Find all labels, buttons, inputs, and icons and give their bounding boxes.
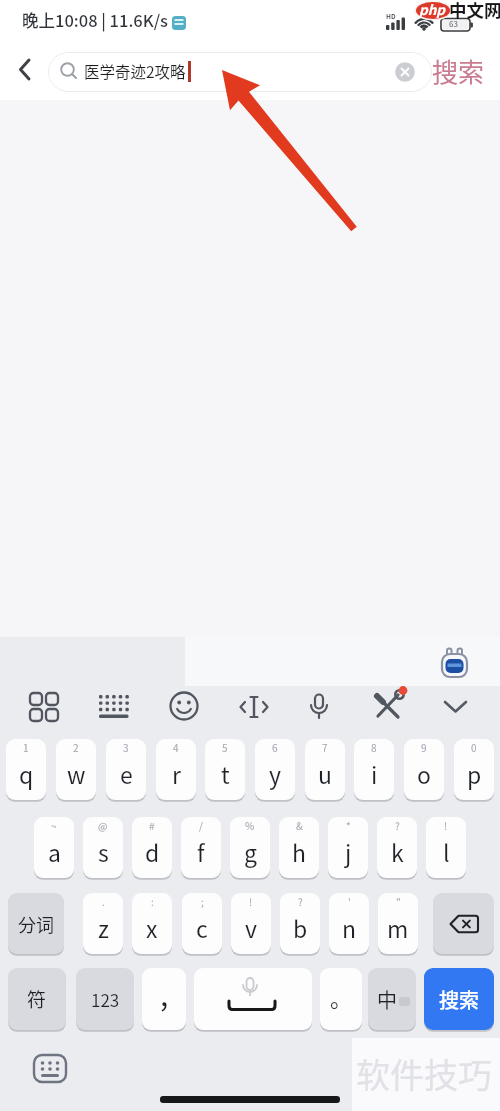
button[interactable]: @ bbox=[83, 817, 123, 878]
staticText: 医学奇迹2攻略 bbox=[84, 60, 186, 82]
staticText: 7 bbox=[322, 740, 328, 754]
button[interactable]: 搜索 bbox=[424, 968, 494, 1030]
button[interactable]: 8 bbox=[354, 739, 394, 800]
button[interactable]: 2 bbox=[56, 739, 96, 800]
staticText: 63 bbox=[449, 18, 458, 30]
staticText: 1 bbox=[23, 740, 29, 754]
button[interactable]: , bbox=[142, 968, 186, 1030]
button[interactable]: / bbox=[181, 817, 221, 878]
button[interactable] bbox=[168, 690, 202, 726]
button[interactable]: 6 bbox=[255, 739, 295, 800]
staticText: : bbox=[151, 894, 154, 908]
staticText: x bbox=[146, 911, 158, 944]
button[interactable]: ' bbox=[329, 893, 369, 954]
staticText: w bbox=[67, 757, 86, 790]
staticText: / bbox=[199, 818, 203, 832]
button[interactable]: ~ bbox=[34, 817, 74, 878]
staticText: ! bbox=[249, 894, 253, 908]
button[interactable]: 4 bbox=[156, 739, 196, 800]
staticText: ~ bbox=[51, 818, 57, 832]
button[interactable] bbox=[303, 690, 335, 726]
staticText: k bbox=[391, 835, 404, 868]
button[interactable]: 中 bbox=[368, 968, 416, 1030]
staticText: 0 bbox=[471, 740, 477, 754]
button[interactable] bbox=[30, 1052, 70, 1086]
staticText: o bbox=[417, 757, 431, 790]
staticText: @ bbox=[98, 818, 108, 832]
button[interactable] bbox=[8, 52, 44, 90]
button[interactable]: ! bbox=[231, 893, 271, 954]
staticText: v bbox=[245, 911, 257, 944]
staticText: 8 bbox=[371, 740, 377, 754]
button[interactable] bbox=[96, 690, 134, 726]
button[interactable]: 1 bbox=[6, 739, 46, 800]
staticText: 6 bbox=[272, 740, 278, 754]
button[interactable]: ; bbox=[182, 893, 222, 954]
staticText: z bbox=[98, 911, 109, 944]
button[interactable] bbox=[433, 893, 494, 954]
staticText: ; bbox=[201, 894, 204, 908]
button[interactable]: ! bbox=[426, 817, 466, 878]
button[interactable] bbox=[440, 646, 470, 680]
button[interactable]: ? bbox=[377, 817, 417, 878]
staticText: r bbox=[172, 757, 181, 790]
button[interactable]: 7 bbox=[305, 739, 345, 800]
staticText: 123 bbox=[91, 987, 120, 1012]
staticText: g bbox=[244, 835, 257, 868]
button[interactable]: # bbox=[132, 817, 172, 878]
button[interactable]: % bbox=[230, 817, 270, 878]
button[interactable] bbox=[237, 690, 271, 726]
staticText: , bbox=[160, 971, 169, 1014]
button[interactable] bbox=[440, 690, 472, 726]
button[interactable]: 123 bbox=[76, 968, 134, 1030]
staticText: ? bbox=[395, 818, 400, 832]
staticText: 晚上10:08 | 11.6K/s bbox=[22, 8, 169, 32]
button[interactable]: * bbox=[328, 817, 368, 878]
button[interactable]: ? bbox=[280, 893, 320, 954]
button[interactable]: 。 bbox=[320, 968, 362, 1030]
staticText: php bbox=[419, 0, 446, 19]
button[interactable]: 符 bbox=[8, 968, 66, 1030]
button[interactable]: . bbox=[83, 893, 123, 954]
button[interactable]: 分词 bbox=[8, 893, 64, 954]
staticText: 软件技巧 bbox=[356, 1049, 492, 1098]
staticText: t bbox=[221, 757, 230, 790]
button[interactable]: 搜索 bbox=[431, 54, 495, 92]
staticText: & bbox=[296, 818, 303, 832]
staticText: j bbox=[345, 835, 352, 868]
staticText: 中文网 bbox=[449, 0, 500, 22]
staticText: 搜索 bbox=[439, 985, 479, 1014]
staticText: l bbox=[443, 835, 450, 868]
staticText: c bbox=[196, 911, 208, 944]
staticText: y bbox=[269, 757, 281, 790]
staticText: 2 bbox=[73, 740, 79, 754]
staticText: 9 bbox=[421, 740, 427, 754]
staticText: i bbox=[371, 757, 378, 790]
staticText: m bbox=[387, 911, 409, 944]
staticText: 符 bbox=[27, 985, 47, 1013]
button[interactable]: 0 bbox=[454, 739, 494, 800]
staticText: 中 bbox=[377, 985, 397, 1014]
staticText: n bbox=[342, 911, 357, 944]
button[interactable] bbox=[194, 968, 312, 1030]
staticText: s bbox=[98, 835, 109, 868]
button[interactable] bbox=[26, 690, 62, 726]
staticText: . bbox=[102, 894, 105, 908]
staticText: 。 bbox=[330, 981, 353, 1013]
staticText: ? bbox=[298, 894, 303, 908]
staticText: e bbox=[120, 757, 133, 790]
button[interactable]: : bbox=[132, 893, 172, 954]
button[interactable]: 3 bbox=[106, 739, 146, 800]
staticText: p bbox=[467, 757, 482, 790]
button[interactable]: 9 bbox=[404, 739, 444, 800]
staticText: 3 bbox=[123, 740, 129, 754]
button[interactable]: & bbox=[279, 817, 319, 878]
staticText: h bbox=[292, 835, 306, 868]
staticText: q bbox=[19, 757, 34, 790]
button[interactable]: 5 bbox=[205, 739, 245, 800]
button[interactable] bbox=[394, 61, 416, 83]
staticText: 4 bbox=[173, 740, 179, 754]
button[interactable]: " bbox=[378, 893, 418, 954]
button[interactable] bbox=[370, 686, 410, 726]
staticText: # bbox=[149, 818, 155, 832]
